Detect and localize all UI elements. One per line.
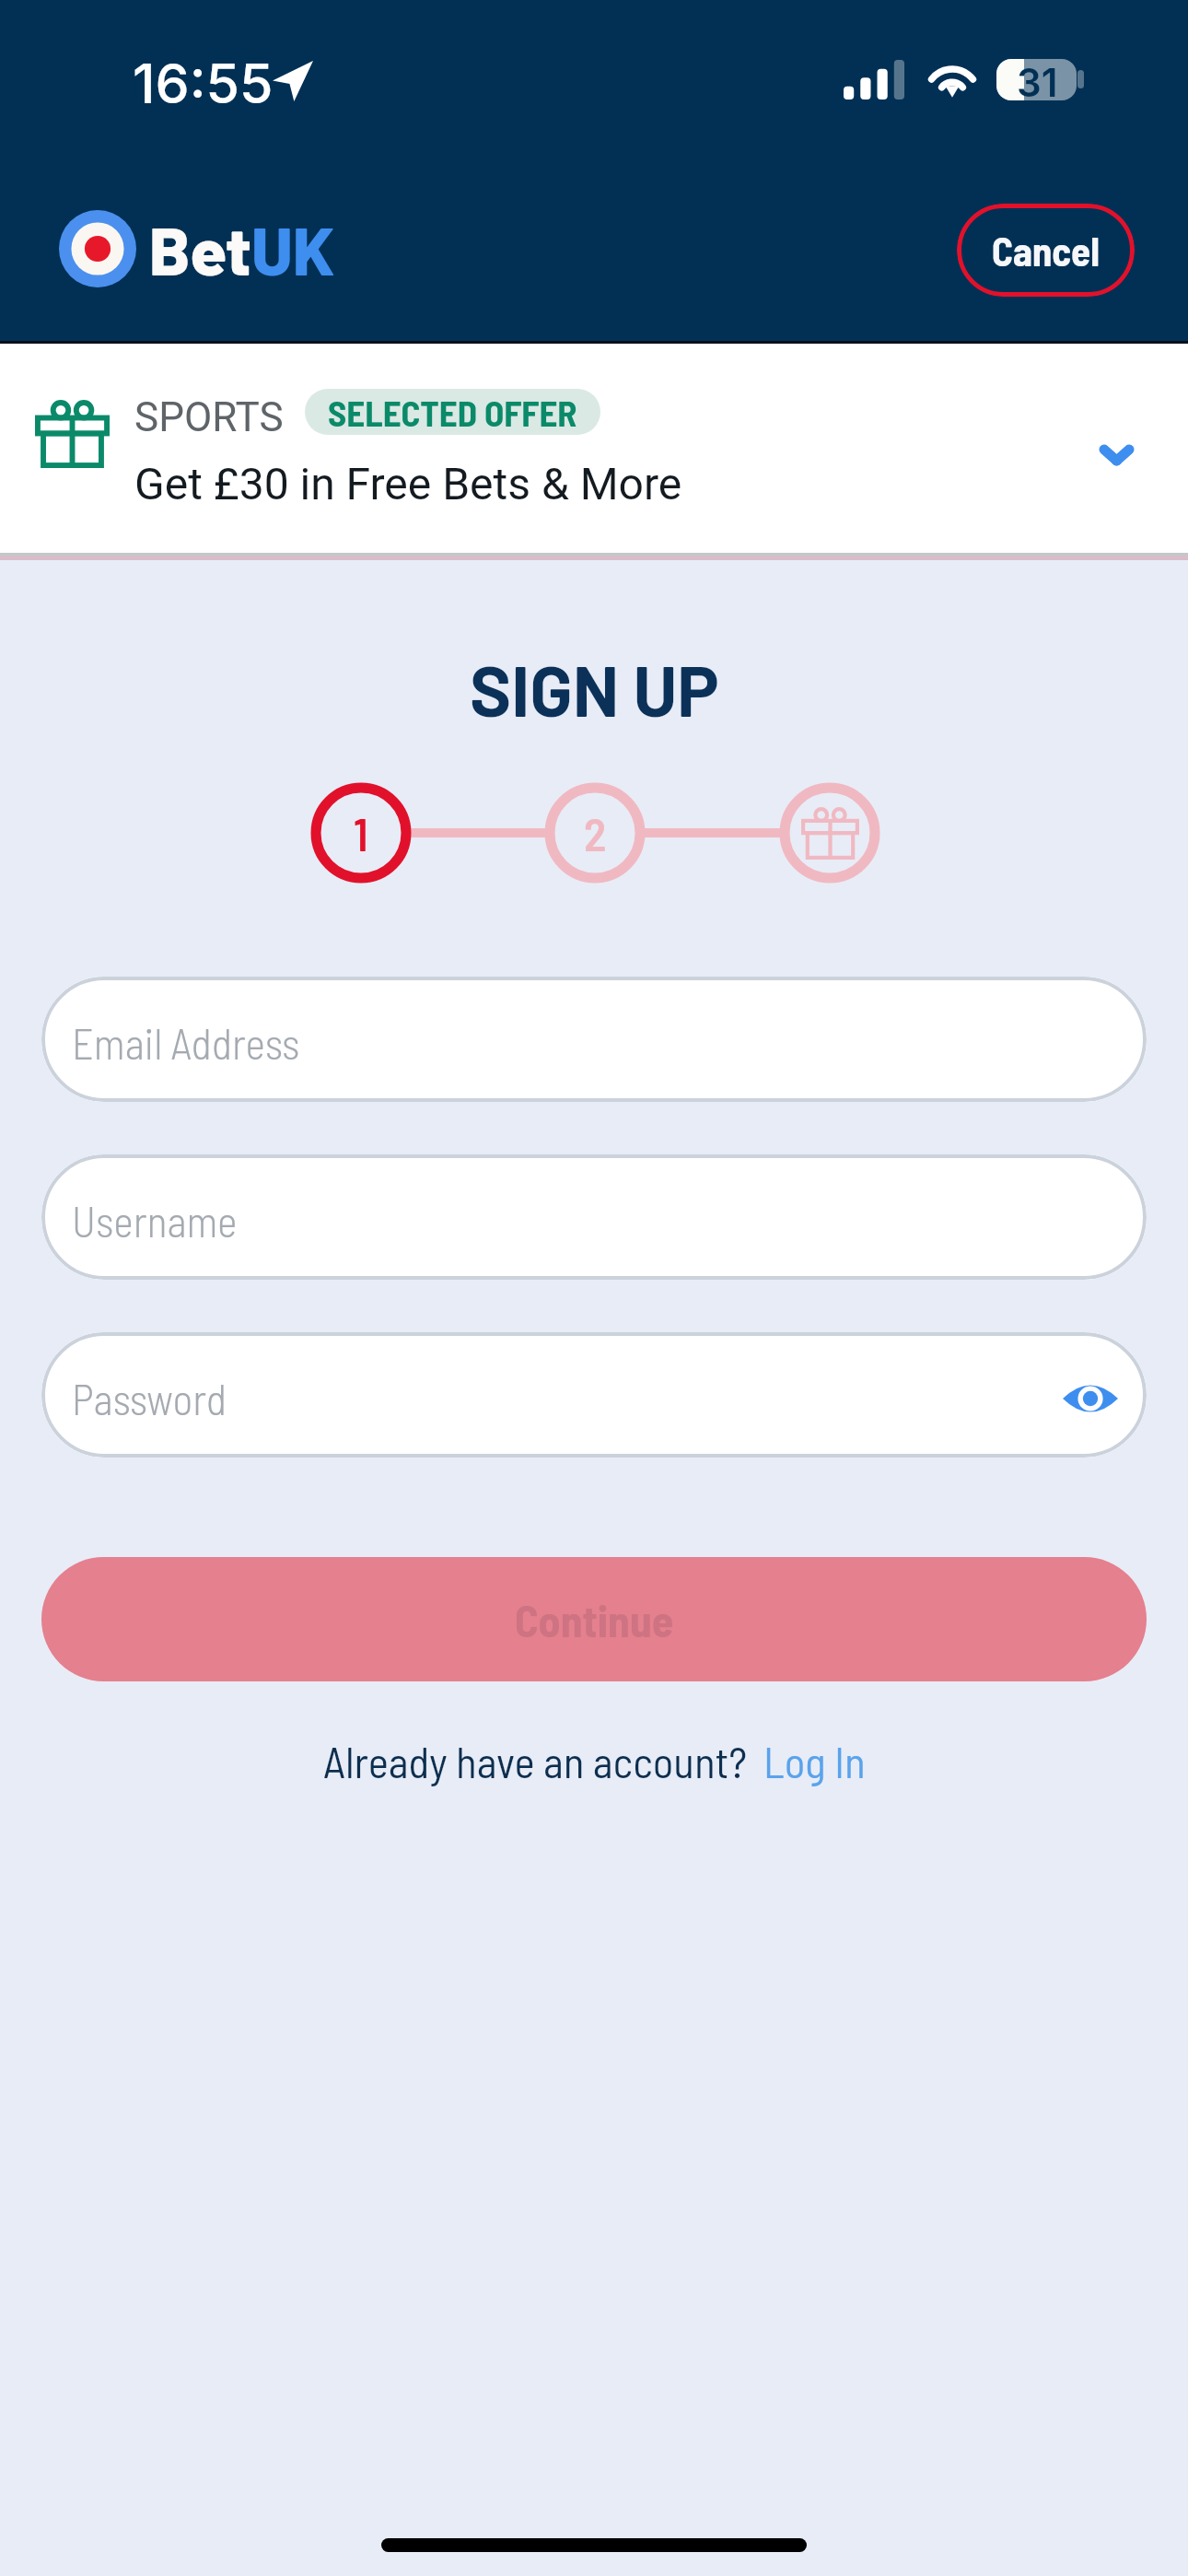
button[interactable]: Cancel <box>957 204 1135 297</box>
button[interactable]: Continue <box>41 1557 1147 1681</box>
staticText: Get £30 in Free Bets & More <box>134 458 682 509</box>
button[interactable]: Username <box>41 1154 1147 1280</box>
staticText: Log In <box>763 1735 866 1786</box>
staticText: Cancel <box>992 227 1100 275</box>
staticText: 16:55 <box>133 51 274 116</box>
staticText: Email Address <box>72 1017 300 1068</box>
staticText: 1 <box>354 805 368 861</box>
staticText: SPORTS <box>134 393 284 441</box>
staticText: 2 <box>584 805 607 861</box>
staticText: SIGN UP <box>470 647 719 731</box>
staticText: Continue <box>515 1593 674 1646</box>
button[interactable]: Password <box>41 1332 1147 1458</box>
staticText: Password <box>72 1373 227 1423</box>
staticText: Already have an account? <box>323 1735 747 1786</box>
staticText: 31 <box>1017 59 1058 100</box>
button[interactable]: Log In <box>763 1735 866 1786</box>
staticText: Username <box>72 1195 238 1246</box>
staticText: SELECTED OFFER <box>328 391 577 434</box>
button[interactable]: Email Address <box>41 977 1147 1102</box>
staticText: UK <box>251 209 335 288</box>
button[interactable]: Show password <box>1055 1364 1125 1434</box>
staticText: Bet <box>149 209 251 288</box>
button[interactable]: SPORTS <box>0 344 1188 560</box>
button[interactable]: Expand offer <box>1075 414 1158 497</box>
